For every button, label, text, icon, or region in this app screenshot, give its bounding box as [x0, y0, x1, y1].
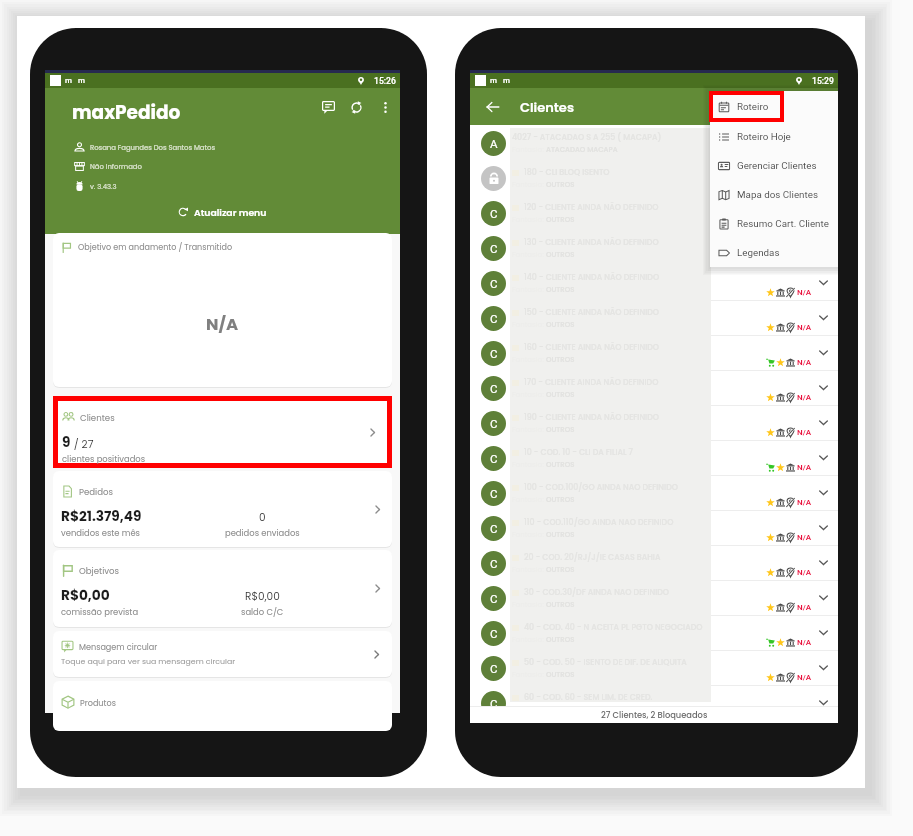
staticText: m	[490, 76, 497, 85]
staticText: C	[490, 627, 498, 640]
staticText: 15:29	[812, 76, 834, 86]
staticText: OUTROS	[546, 215, 575, 225]
button[interactable]: Sincronizar	[344, 95, 368, 119]
button[interactable]: C	[470, 511, 838, 546]
button[interactable]: C	[470, 231, 838, 266]
button[interactable]: Expandir	[815, 344, 831, 360]
staticText: C	[490, 207, 498, 220]
staticText: N/A	[797, 323, 812, 332]
button[interactable]: Mensagem circular	[53, 631, 392, 677]
button[interactable]: Gerenciar Clientes	[710, 151, 838, 180]
staticText: 10 - COD. 10 - CLI DA FILIAL 7	[524, 447, 634, 458]
button[interactable]: 180 - CLI BLOQ ISENTO	[470, 161, 838, 196]
button[interactable]: C	[470, 546, 838, 581]
button[interactable]: C	[470, 476, 838, 511]
button[interactable]: C	[470, 196, 838, 231]
button[interactable]: Expandir	[815, 449, 831, 465]
button[interactable]: Expandir	[815, 659, 831, 675]
button[interactable]: Expandir	[815, 589, 831, 605]
button[interactable]: Voltar	[481, 95, 505, 119]
button[interactable]: Mais opções	[373, 95, 397, 119]
button[interactable]: C	[470, 301, 838, 336]
staticText: / 27	[71, 437, 94, 452]
button[interactable]: Objetivos	[53, 550, 392, 627]
staticText: N/A	[206, 313, 239, 336]
staticText: N/A	[797, 498, 812, 507]
staticText: N/A	[797, 428, 812, 437]
button[interactable]: Resumo Cart. Cliente	[710, 209, 838, 238]
staticText: ATACADAO MACAPA	[546, 145, 618, 155]
staticText: OUTROS	[546, 250, 575, 260]
staticText: Roteiro Hoje	[737, 131, 791, 142]
staticText: Produtos	[80, 697, 116, 708]
button[interactable]: Pedidos	[53, 471, 392, 547]
staticText: OUTROS	[546, 705, 575, 715]
button[interactable]: Roteiro Hoje	[710, 122, 838, 151]
staticText: 0	[259, 510, 266, 525]
staticText: 170 - CLIENTE AINDA NÃO DEFINIDO	[524, 377, 659, 388]
staticText: C	[490, 662, 498, 675]
button[interactable]: Expandir	[815, 379, 831, 395]
staticText: N/A	[797, 673, 812, 682]
button[interactable]: Expandir	[815, 624, 831, 640]
button[interactable]: C	[470, 441, 838, 476]
button[interactable]: C	[470, 406, 838, 441]
button[interactable]: Expandir	[815, 274, 831, 290]
button[interactable]: Expandir	[815, 414, 831, 430]
staticText: Legendas	[737, 247, 780, 258]
staticText: Resumo Cart. Cliente	[737, 218, 829, 229]
button[interactable]: Expandir	[815, 519, 831, 535]
button[interactable]: Clientes	[58, 401, 387, 463]
staticText: 180 - CLI BLOQ ISENTO	[524, 167, 610, 178]
staticText: m	[65, 76, 72, 85]
staticText: Pedidos	[79, 486, 114, 498]
button[interactable]: Expandir	[815, 484, 831, 500]
staticText: A	[490, 137, 498, 150]
staticText: 150 - CLIENTE AINDA NÃO DEFINIDO	[524, 307, 660, 318]
button[interactable]: C	[470, 686, 838, 721]
button[interactable]: Expandir	[815, 554, 831, 570]
staticText: R$0,00	[245, 589, 280, 604]
button[interactable]: C	[470, 371, 838, 406]
button[interactable]: Legendas	[710, 238, 838, 267]
staticText: 140 - CLIENTE AINDA NÃO DEFINIDO	[524, 272, 660, 283]
button[interactable]: Expandir	[815, 309, 831, 325]
button[interactable]: C	[470, 336, 838, 371]
staticText: N/A	[797, 603, 812, 612]
button[interactable]: Produtos	[53, 681, 392, 731]
button[interactable]: Expandir	[815, 694, 831, 710]
button[interactable]: C	[470, 616, 838, 651]
button[interactable]: Mapa dos Clientes	[710, 180, 838, 209]
staticText: 4027 - ATACADAO S A 255 ( MACAPA)	[512, 132, 662, 143]
staticText: N/A	[797, 533, 812, 542]
staticText: OUTROS	[546, 425, 575, 435]
staticText: Roteiro	[737, 101, 769, 112]
button[interactable]: Mensagens	[316, 95, 340, 119]
staticText: OUTROS	[546, 180, 575, 190]
staticText: m	[503, 76, 510, 85]
staticText: N/A	[797, 288, 812, 297]
button[interactable]: C	[470, 266, 838, 301]
button[interactable]: Atualizar menu	[45, 201, 400, 223]
staticText: N/A	[797, 393, 812, 402]
staticText: 9	[62, 433, 71, 452]
button[interactable]: C	[470, 581, 838, 616]
button[interactable]: C	[470, 651, 838, 686]
staticText: N/A	[797, 568, 812, 577]
staticText: C	[490, 592, 498, 605]
staticText: Objetivo em andamento / Transmitido	[78, 242, 233, 253]
button[interactable]: A	[470, 126, 838, 161]
staticText: 110 - COD.110/GO AINDA NAO DEFINIDO	[524, 517, 674, 528]
button[interactable]: Roteiro	[710, 92, 838, 121]
